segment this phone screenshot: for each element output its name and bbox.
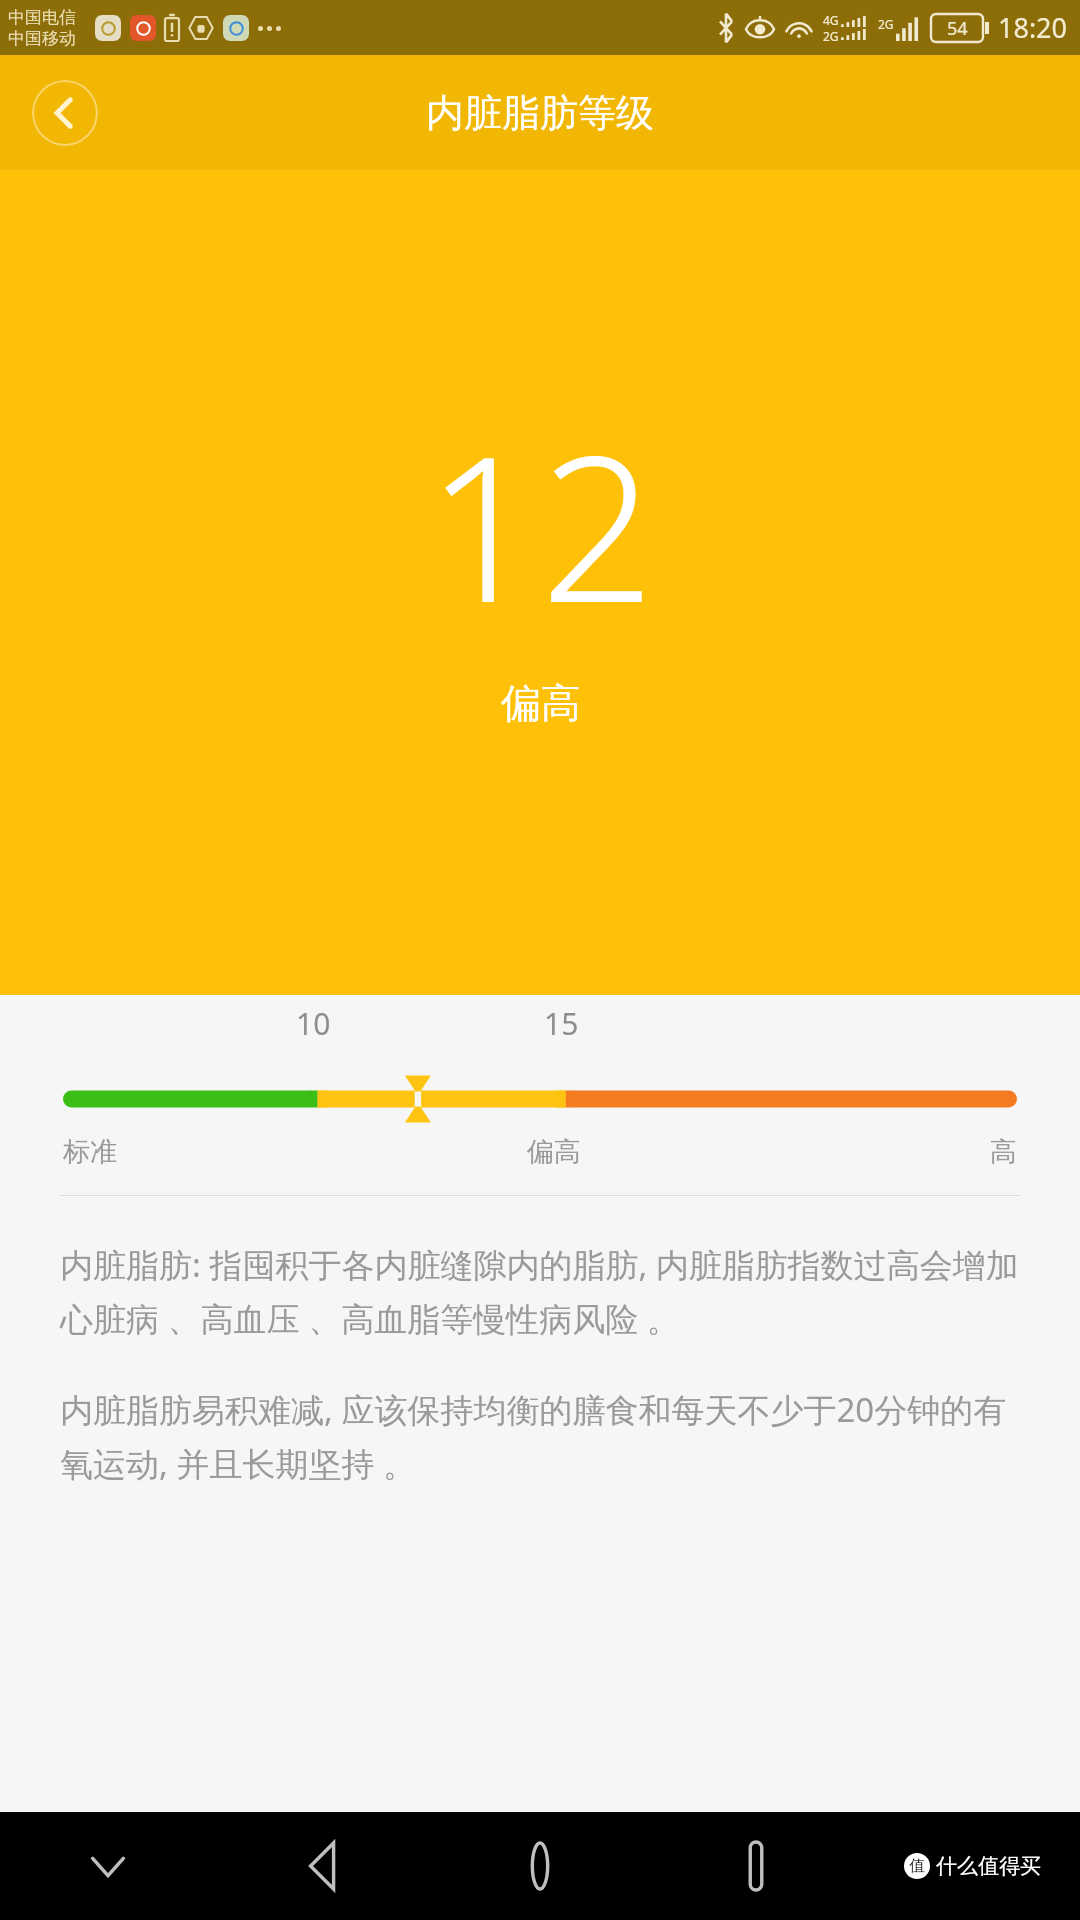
staticText: 值 xyxy=(909,1856,925,1876)
staticText: 内脏脂肪易积难减, 应该保持均衡的膳食和每天不少于20分钟的有氧运动, 并且长期… xyxy=(60,1387,1022,1486)
staticText: 偏高 xyxy=(501,678,581,728)
staticText: 中国电信 xyxy=(8,7,76,28)
staticText: 12 xyxy=(426,388,655,660)
staticText: 54 xyxy=(947,16,968,41)
staticText: 中国移动 xyxy=(8,28,76,49)
staticText: 标准 xyxy=(63,1135,117,1169)
staticText: 内脏脂肪等级 xyxy=(426,89,654,137)
button[interactable]: Home xyxy=(432,1812,648,1920)
staticText: 18:20 xyxy=(998,9,1068,46)
staticText: 偏高 xyxy=(527,1135,581,1169)
staticText: 高 xyxy=(990,1135,1017,1169)
staticText: 15 xyxy=(544,1003,579,1044)
button[interactable]: Back xyxy=(216,1812,432,1920)
staticText: 10 xyxy=(296,1003,331,1044)
staticText: 什么值得买 xyxy=(936,1853,1041,1879)
button[interactable]: Hide keyboard xyxy=(0,1812,216,1920)
staticText: 4G xyxy=(823,12,839,28)
button[interactable]: Recents xyxy=(648,1812,864,1920)
staticText: 2G xyxy=(823,28,839,44)
staticText: 2G xyxy=(878,16,894,32)
button[interactable]: Back xyxy=(32,80,98,146)
staticText: 内脏脂肪: 指囤积于各内脏缝隙内的脂肪, 内脏脂肪指数过高会增加心脏病 、高血压… xyxy=(60,1242,1022,1341)
